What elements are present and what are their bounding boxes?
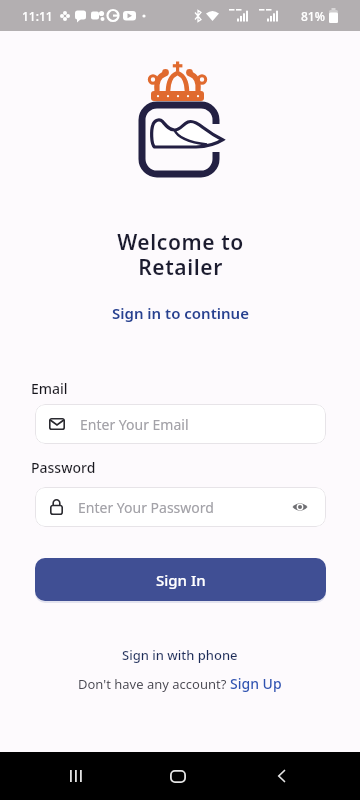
button[interactable]: Sign In (35, 558, 326, 601)
staticText: Sign In (156, 570, 206, 590)
staticText: Welcome to Retailer (117, 228, 244, 281)
staticText: Sign in to continue (112, 303, 249, 323)
staticText: Sign in with phone (122, 646, 238, 664)
button[interactable] (283, 487, 317, 527)
button[interactable] (164, 762, 192, 790)
button[interactable]: Sign Up (230, 674, 282, 693)
button[interactable] (62, 762, 90, 790)
staticText: Enter Your Email (80, 415, 189, 434)
button[interactable]: Enter Your Email (35, 404, 326, 444)
button[interactable] (267, 762, 295, 790)
button[interactable]: Enter Your Password (35, 487, 326, 527)
staticText: 81% (301, 8, 325, 24)
staticText: Don't have any account? (78, 675, 230, 693)
staticText: 11:11 (22, 8, 53, 24)
staticText: Enter Your Password (78, 498, 214, 517)
staticText: Password (31, 458, 96, 477)
staticText: Email (31, 379, 68, 398)
staticText: Sign Up (230, 674, 282, 693)
button[interactable]: Sign in with phone (122, 646, 238, 664)
